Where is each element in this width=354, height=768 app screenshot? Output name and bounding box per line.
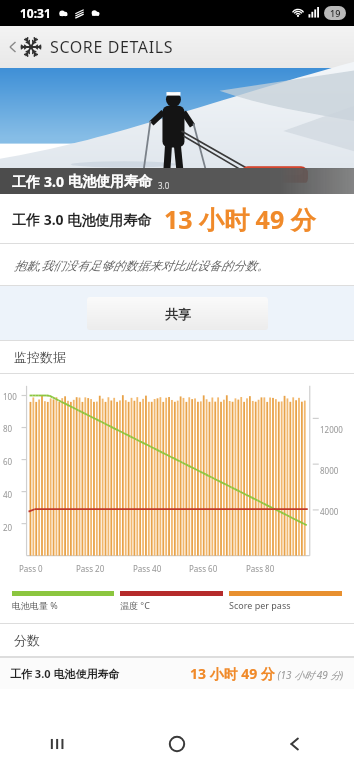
staticText: 80 [3, 423, 13, 434]
staticText: 电池电量 % [12, 599, 58, 611]
staticText: Pass 0 [19, 563, 43, 574]
button[interactable]: Home [118, 720, 236, 768]
staticText: 监控数据 [14, 349, 66, 365]
staticText: 抱歉,我们没有足够的数据来对比此设备的分数。 [14, 257, 270, 273]
staticText: 10:31 [20, 5, 51, 21]
staticText: 12000 [320, 424, 343, 435]
staticText: 电池使用寿命 [68, 173, 152, 191]
staticText: 4000 [320, 506, 339, 517]
staticText: 工作 3.0 电池使用寿命 [12, 210, 152, 229]
staticText: 工作 3.0 电池使用寿命 [10, 666, 120, 681]
staticText: 分数 [14, 632, 40, 648]
staticText: Pass 40 [133, 563, 162, 574]
button[interactable]: Back [4, 36, 178, 58]
staticText: 共享 [165, 306, 191, 322]
button[interactable]: 共享 [87, 297, 268, 330]
staticText: 3.0 [44, 172, 68, 191]
staticText: SCORE DETAILS [50, 36, 174, 58]
staticText: 13 小时 49 分 [164, 202, 316, 236]
staticText: 3.0 [158, 180, 170, 191]
button[interactable]: Recent apps [0, 720, 118, 768]
staticText: Score per pass [229, 599, 291, 611]
staticText: 19 [330, 7, 341, 19]
staticText: 60 [3, 456, 13, 467]
staticText: Pass 60 [189, 563, 218, 574]
staticText: 20 [3, 522, 13, 533]
staticText: 40 [3, 489, 13, 500]
staticText: 8000 [320, 465, 339, 476]
staticText: 13 小时 49 分 (13 小时 49 分) [190, 664, 344, 683]
staticText: 温度 °C [120, 599, 150, 611]
staticText: 100 [3, 391, 17, 402]
staticText: 工作 [12, 172, 44, 191]
staticText: Pass 20 [76, 563, 105, 574]
button[interactable]: Back [236, 720, 354, 768]
staticText: Pass 80 [246, 563, 275, 574]
